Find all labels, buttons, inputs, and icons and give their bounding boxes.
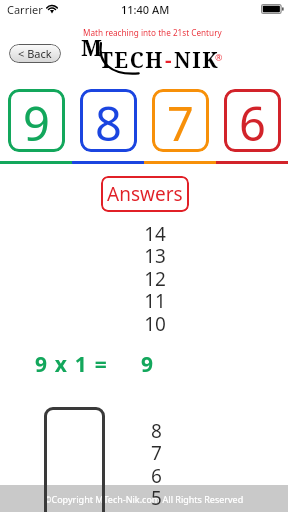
- staticText: -: [165, 46, 174, 75]
- staticText: < Back: [18, 46, 52, 61]
- staticText: 13: [144, 243, 166, 269]
- staticText: 10: [144, 311, 166, 337]
- staticText: 7: [151, 440, 162, 466]
- staticText: 9: [23, 91, 50, 152]
- staticText: 6: [239, 91, 266, 152]
- staticText: 9 x 1 =: [35, 350, 108, 379]
- staticText: 12: [144, 266, 166, 292]
- staticText: Carrier: [7, 2, 43, 17]
- staticText: 11: [144, 288, 166, 314]
- staticText: ®: [215, 51, 223, 63]
- staticText: 7: [167, 91, 194, 152]
- staticText: 5: [151, 485, 162, 511]
- button[interactable]: 7: [152, 89, 209, 152]
- button[interactable]: Answers: [101, 176, 189, 212]
- button[interactable]: 9: [8, 89, 65, 152]
- staticText: 14: [144, 221, 166, 247]
- staticText: ©Copyright MTech-Nik.com All Rights Rese…: [44, 493, 244, 505]
- staticText: Answers: [107, 181, 183, 207]
- staticText: 11:40 AM: [121, 2, 170, 17]
- button[interactable]: 6: [224, 89, 281, 152]
- staticText: TECH: [99, 46, 165, 75]
- button[interactable]: 8: [80, 89, 137, 152]
- staticText: NIK: [174, 46, 220, 75]
- staticText: 9: [141, 350, 154, 379]
- button[interactable]: < Back: [9, 44, 61, 63]
- staticText: 8: [95, 91, 122, 152]
- staticText: Math reaching into the 21st Century: [83, 27, 222, 38]
- staticText: 6: [151, 463, 162, 489]
- staticText: 8: [151, 418, 162, 444]
- button[interactable]: Answer input: [44, 407, 105, 512]
- staticText: M: [81, 32, 102, 62]
